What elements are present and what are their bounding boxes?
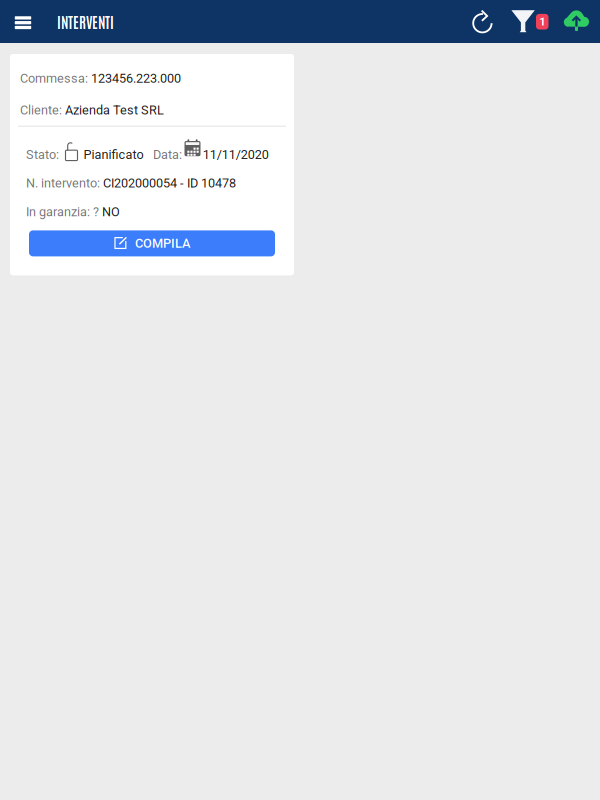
staticText: Azienda Test SRL [65,103,164,118]
staticText: NO [99,204,120,219]
button[interactable]: Menu [3,1,43,44]
staticText: CI202000054 - ID 10478 [103,176,236,190]
staticText: ? [93,204,99,219]
staticText: Commessa: [20,71,91,86]
button[interactable]: Filter [511,10,551,53]
staticText: 123456.223.000 [91,71,181,86]
staticText: COMPILA [135,236,190,251]
button[interactable]: COMPILA [29,230,275,256]
staticText: In garanzia: [26,204,93,219]
staticText: 1 [539,15,545,28]
staticText: INTERVENTI [57,13,114,31]
staticText: 11/11/2020 [203,147,269,162]
staticText: Pianificato [83,147,143,162]
staticText: Data: [153,147,182,162]
button[interactable]: Upload [563,9,597,52]
staticText: N. intervento: [26,176,103,190]
staticText: Stato: [26,147,59,162]
staticText: Cliente: [20,103,65,118]
button[interactable]: Refresh [473,8,513,51]
